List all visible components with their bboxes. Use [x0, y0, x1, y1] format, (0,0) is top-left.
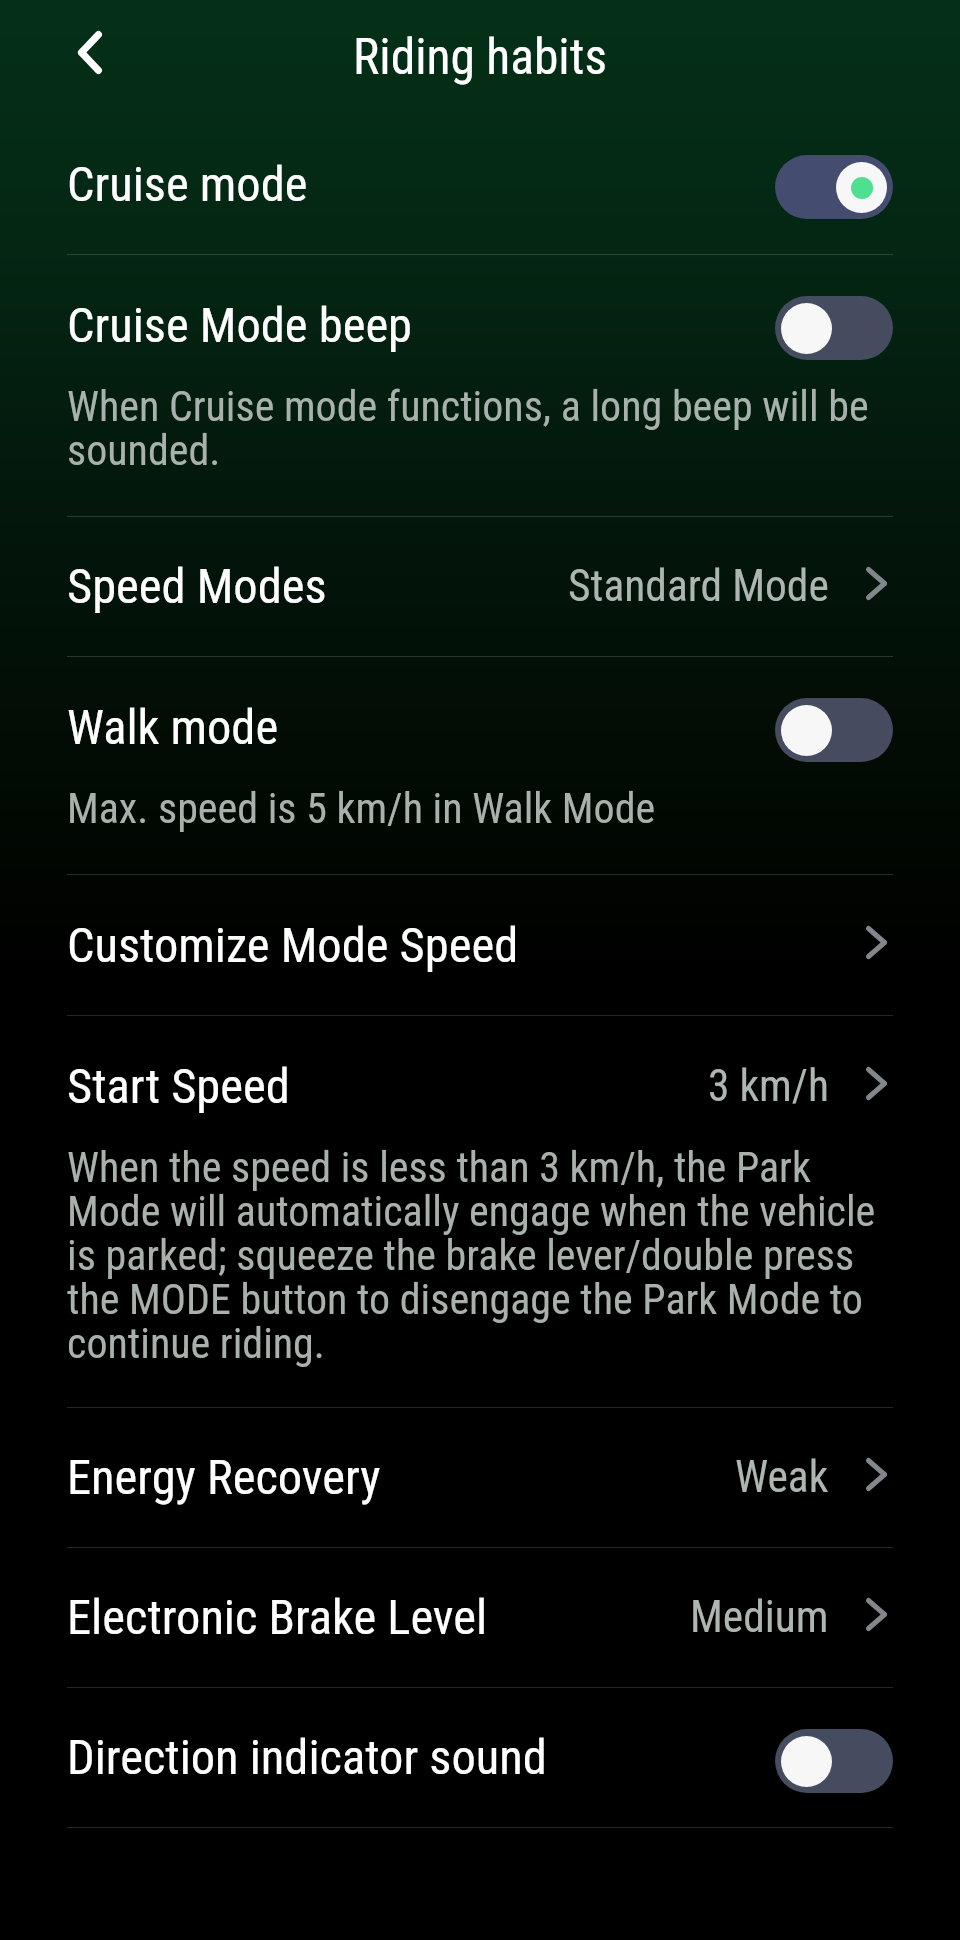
- staticText: Energy Recovery: [67, 1449, 381, 1506]
- staticText: Speed Modes: [67, 558, 327, 615]
- button[interactable]: Switch off: [775, 1729, 893, 1793]
- staticText: When the speed is less than 3 km/h, the …: [67, 1143, 887, 1368]
- button[interactable]: Switch off: [775, 698, 893, 762]
- staticText: Walk mode: [67, 699, 279, 756]
- button[interactable]: Start Speed: [0, 1016, 960, 1407]
- staticText: Direction indicator sound: [67, 1729, 547, 1786]
- staticText: Cruise Mode beep: [67, 297, 413, 354]
- button[interactable]: Electronic Brake Level: [0, 1548, 960, 1687]
- button[interactable]: Switch on: [775, 155, 893, 219]
- button[interactable]: Walk mode: [0, 657, 960, 874]
- staticText: When Cruise mode functions, a long beep …: [67, 382, 893, 475]
- staticText: Customize Mode Speed: [67, 917, 519, 974]
- staticText: Medium: [690, 1592, 829, 1643]
- button[interactable]: Back: [60, 22, 120, 82]
- staticText: Cruise mode: [67, 156, 308, 213]
- button[interactable]: Direction indicator sound: [0, 1688, 960, 1827]
- staticText: 3 km/h: [708, 1061, 829, 1112]
- button[interactable]: Customize Mode Speed: [0, 875, 960, 1015]
- staticText: Riding habits: [353, 28, 607, 86]
- staticText: Weak: [735, 1452, 829, 1503]
- button[interactable]: Cruise Mode beep: [0, 255, 960, 516]
- button[interactable]: Speed Modes: [0, 517, 960, 656]
- staticText: Electronic Brake Level: [67, 1589, 488, 1646]
- staticText: Max. speed is 5 km/h in Walk Mode: [67, 784, 656, 833]
- button[interactable]: Switch off: [775, 296, 893, 360]
- staticText: Start Speed: [67, 1058, 290, 1115]
- button[interactable]: Energy Recovery: [0, 1408, 960, 1547]
- button[interactable]: Cruise mode: [0, 114, 960, 254]
- staticText: Standard Mode: [568, 561, 829, 612]
